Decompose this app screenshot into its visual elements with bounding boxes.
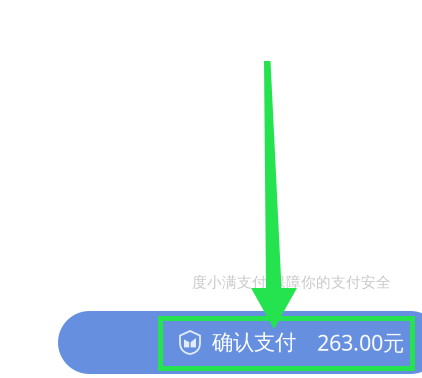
staticText: 确认支付: [212, 329, 296, 356]
staticText: 263.00元: [317, 328, 404, 357]
button[interactable]: 确认支付 263.00元: [58, 311, 422, 374]
staticText: 度小满支付,保障你的支付安全: [192, 272, 391, 291]
